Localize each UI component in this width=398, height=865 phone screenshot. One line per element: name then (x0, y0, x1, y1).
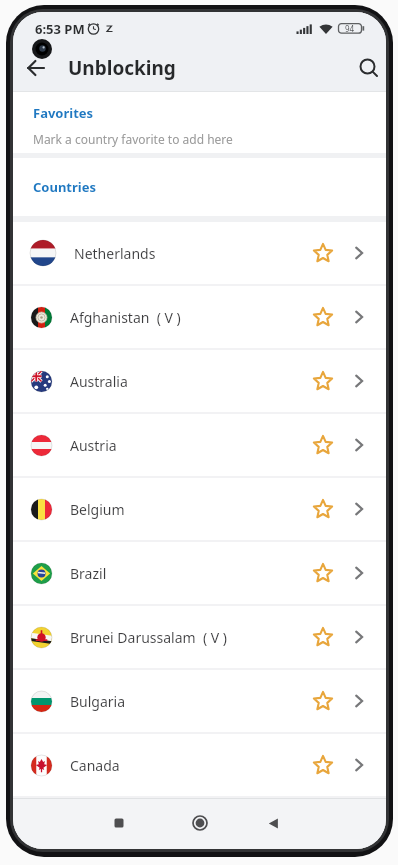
button[interactable] (312, 690, 334, 712)
button[interactable]: Belgium (13, 478, 386, 540)
button[interactable]: Bulgaria (13, 670, 386, 732)
button[interactable] (312, 626, 334, 648)
button[interactable]: Canada (13, 734, 386, 796)
staticText: Unblocking (68, 55, 176, 81)
staticText: Austria (70, 436, 117, 455)
staticText: Bulgaria (70, 692, 126, 711)
button[interactable] (312, 434, 334, 456)
staticText: Canada (70, 756, 120, 775)
button[interactable] (251, 801, 295, 845)
staticText: 94 (345, 23, 355, 34)
button[interactable]: Brunei Darussalam ( V ) (13, 606, 386, 668)
staticText: Brazil (70, 564, 107, 583)
button[interactable] (312, 754, 334, 776)
button[interactable]: Netherlands (13, 222, 386, 284)
staticText: 6:53 PM (35, 20, 85, 38)
button[interactable]: Afghanistan ( V ) (13, 286, 386, 348)
button[interactable] (312, 306, 334, 328)
staticText: Favorites (33, 104, 94, 122)
staticText: Australia (70, 372, 128, 391)
button[interactable] (13, 45, 59, 91)
button[interactable]: Australia (13, 350, 386, 412)
staticText: Brunei Darussalam ( V ) (70, 628, 228, 647)
button[interactable] (312, 562, 334, 584)
staticText: Belgium (70, 500, 125, 519)
staticText: Countries (33, 178, 96, 196)
staticText: Afghanistan ( V ) (70, 308, 181, 327)
button[interactable]: Austria (13, 414, 386, 476)
button[interactable]: Favorites (13, 92, 386, 153)
button[interactable]: Brazil (13, 542, 386, 604)
button[interactable] (312, 498, 334, 520)
button[interactable] (178, 801, 222, 845)
button[interactable] (352, 51, 386, 85)
staticText: Netherlands (74, 244, 156, 263)
button[interactable] (312, 370, 334, 392)
button[interactable] (312, 242, 334, 264)
staticText: Mark a country favorite to add here (33, 131, 233, 147)
button[interactable] (97, 801, 141, 845)
